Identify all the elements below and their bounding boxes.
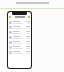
button[interactable]	[8, 30, 31, 35]
button[interactable]	[8, 25, 31, 30]
button[interactable]	[8, 45, 31, 50]
button[interactable]	[8, 15, 31, 18]
button[interactable]	[8, 35, 31, 40]
button[interactable]	[8, 20, 31, 25]
button[interactable]	[8, 40, 31, 45]
button[interactable]	[8, 50, 31, 55]
